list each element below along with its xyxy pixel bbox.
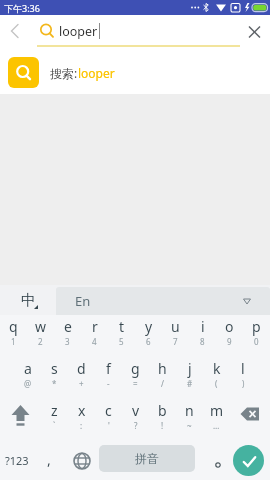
staticText: v <box>132 401 140 420</box>
staticText: m <box>210 401 224 420</box>
button[interactable] <box>233 445 264 476</box>
staticText: = <box>133 378 138 389</box>
staticText: w <box>35 317 47 336</box>
button[interactable]: g <box>122 357 149 399</box>
staticText: 中 <box>21 291 36 310</box>
staticText: En <box>75 292 91 310</box>
button[interactable]: j <box>176 357 203 399</box>
staticText: 1 <box>11 336 16 347</box>
button[interactable]: m <box>203 399 230 441</box>
staticText: t <box>119 317 125 336</box>
button[interactable]: l <box>230 357 256 399</box>
staticText: looper <box>59 23 98 40</box>
staticText: ) <box>242 378 245 389</box>
staticText: 2 <box>38 336 43 347</box>
staticText: ! <box>161 420 164 431</box>
button[interactable]: c <box>95 399 122 441</box>
staticText: p <box>252 317 261 336</box>
staticText: h <box>158 359 167 378</box>
staticText: 3 <box>65 336 70 347</box>
staticText: 5 <box>119 336 124 347</box>
staticText: # <box>187 378 193 389</box>
button[interactable]: u <box>162 315 189 357</box>
button[interactable]: t <box>108 315 135 357</box>
button[interactable] <box>72 451 92 471</box>
staticText: u <box>171 317 180 336</box>
staticText: 下午3:36 <box>4 2 40 14</box>
staticText: ~ <box>187 420 192 431</box>
button[interactable]: f <box>95 357 122 399</box>
button[interactable]: o <box>216 315 243 357</box>
staticText: 4 <box>92 336 97 347</box>
staticText: z <box>51 401 58 420</box>
staticText: looper <box>78 65 115 81</box>
staticText: 9 <box>227 336 232 347</box>
staticText: k <box>213 359 221 378</box>
button[interactable]: 中 <box>0 285 56 315</box>
button[interactable]: z <box>41 399 68 441</box>
button[interactable]: q <box>0 315 27 357</box>
button[interactable]: e <box>54 315 81 357</box>
staticText: x <box>78 401 86 420</box>
staticText: e <box>64 317 72 336</box>
staticText: : <box>80 420 83 431</box>
staticText: 8 <box>200 336 205 347</box>
staticText: * <box>52 378 57 389</box>
button[interactable]: x <box>68 399 95 441</box>
staticText: 拼音 <box>135 451 159 466</box>
button[interactable] <box>230 399 270 441</box>
button[interactable] <box>0 15 32 47</box>
staticText: j <box>188 359 192 378</box>
staticText: - <box>107 378 110 389</box>
staticText: ` <box>53 420 56 431</box>
button[interactable]: 拼音 <box>99 445 195 472</box>
button[interactable]: k <box>203 357 230 399</box>
staticText: s <box>51 359 58 378</box>
button[interactable]: En <box>56 287 270 315</box>
staticText: 0 <box>254 336 259 347</box>
button[interactable]: y <box>135 315 162 357</box>
staticText: c <box>105 401 112 420</box>
staticText: l <box>241 359 245 378</box>
staticText: b <box>158 401 167 420</box>
button[interactable] <box>240 16 270 46</box>
button[interactable]: d <box>68 357 95 399</box>
staticText: q <box>9 317 18 336</box>
staticText: ?123 <box>5 453 29 468</box>
staticText: @ <box>24 378 32 389</box>
button[interactable]: v <box>122 399 149 441</box>
staticText: ? <box>134 420 138 431</box>
staticText: 7 <box>173 336 178 347</box>
button[interactable]: s <box>41 357 68 399</box>
button[interactable]: h <box>149 357 176 399</box>
button[interactable] <box>0 399 41 441</box>
staticText: f <box>106 359 111 378</box>
staticText: a <box>24 359 32 378</box>
staticText: 6 <box>146 336 151 347</box>
button[interactable]: p <box>243 315 270 357</box>
staticText: ( <box>215 378 218 389</box>
button[interactable]: i <box>189 315 216 357</box>
button[interactable]: n <box>176 399 203 441</box>
button[interactable]: w <box>27 315 54 357</box>
button[interactable]: b <box>149 399 176 441</box>
staticText: y <box>145 317 153 336</box>
button[interactable]: 搜索: <box>0 47 270 94</box>
staticText: n <box>185 401 194 420</box>
staticText: , <box>47 450 51 469</box>
staticText: d <box>77 359 86 378</box>
button[interactable]: a <box>14 357 41 399</box>
button[interactable]: r <box>81 315 108 357</box>
staticText: / <box>161 378 164 389</box>
staticText: o <box>225 317 234 336</box>
staticText: i <box>201 317 205 336</box>
staticText: ' <box>108 420 110 431</box>
staticText: g <box>131 359 140 378</box>
staticText: 搜索: <box>50 65 78 81</box>
button[interactable]: ?123 <box>5 453 29 468</box>
staticText: r <box>92 317 98 336</box>
staticText: … <box>213 420 220 431</box>
staticText: + <box>79 378 84 389</box>
